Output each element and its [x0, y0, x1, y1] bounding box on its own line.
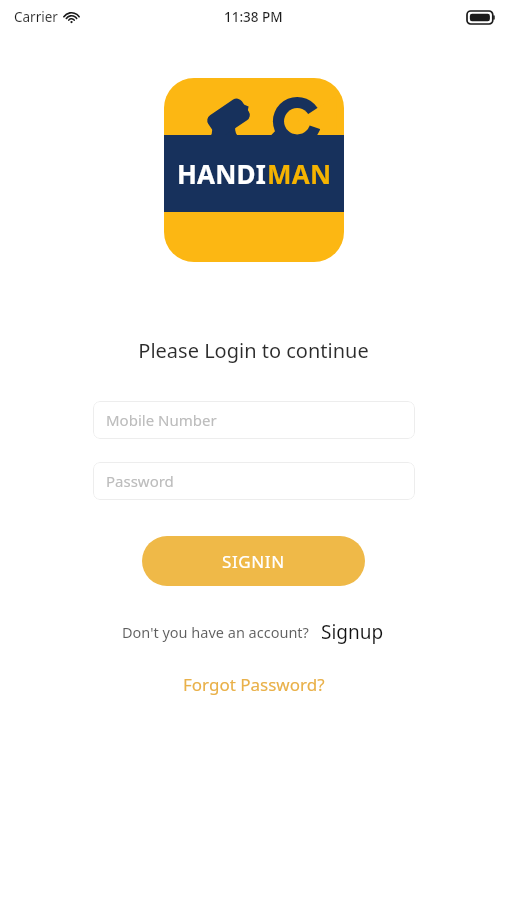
staticText: HANDI — [177, 156, 267, 191]
staticText: 11:38 PM — [224, 8, 283, 26]
staticText: MAN — [267, 156, 332, 191]
staticText: Forgot Password? — [183, 673, 325, 696]
button[interactable]: Signup — [319, 617, 386, 647]
button[interactable]: SIGNIN — [142, 536, 365, 586]
staticText: Mobile Number — [106, 410, 217, 430]
button[interactable]: Password — [93, 462, 415, 500]
staticText: Password — [106, 471, 174, 491]
button[interactable]: Forgot Password? — [177, 670, 331, 699]
staticText: Carrier — [14, 8, 58, 26]
staticText: Please Login to continue — [138, 337, 369, 364]
staticText: Don't you have an account? — [122, 622, 309, 642]
button[interactable]: Mobile Number — [93, 401, 415, 439]
staticText: SIGNIN — [222, 550, 285, 573]
staticText: Signup — [321, 619, 384, 645]
